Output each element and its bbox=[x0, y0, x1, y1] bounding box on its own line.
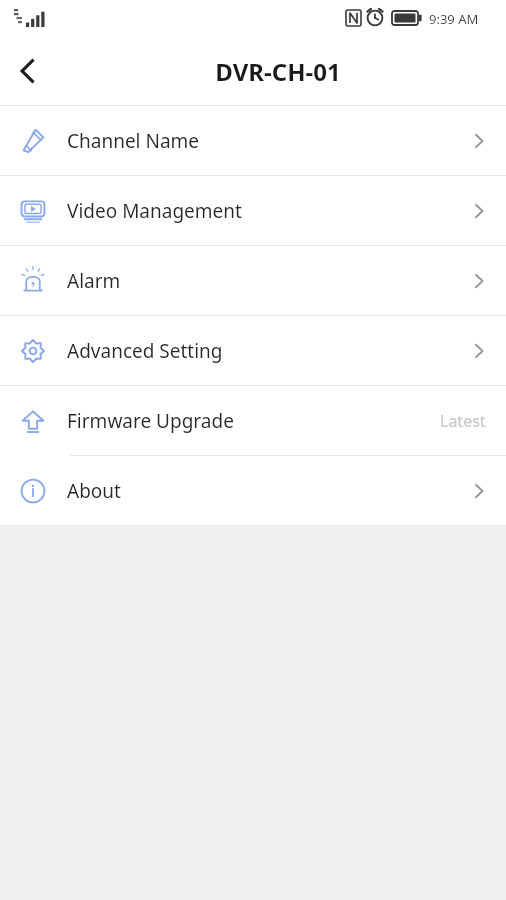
button[interactable]: Advanced Setting bbox=[0, 316, 506, 385]
button[interactable]: Video Management bbox=[0, 176, 506, 245]
staticText: Firmware Upgrade bbox=[67, 408, 234, 434]
button[interactable]: Back bbox=[0, 43, 56, 99]
staticText: Alarm bbox=[67, 268, 121, 294]
button[interactable]: Alarm bbox=[0, 246, 506, 315]
staticText: Latest bbox=[440, 410, 486, 432]
staticText: DVR-CH-01 bbox=[215, 55, 341, 88]
button[interactable]: Channel Name bbox=[0, 106, 506, 175]
staticText: Advanced Setting bbox=[67, 338, 223, 364]
staticText: Channel Name bbox=[67, 128, 200, 154]
button[interactable]: Firmware Upgrade bbox=[0, 386, 506, 455]
staticText: About bbox=[67, 478, 121, 504]
button[interactable]: About bbox=[0, 456, 506, 525]
staticText: Video Management bbox=[67, 198, 242, 224]
staticText: 9:39 AM bbox=[429, 10, 479, 28]
